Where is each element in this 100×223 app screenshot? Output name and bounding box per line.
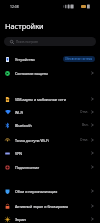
staticText: VPN: [15, 151, 91, 156]
staticText: SIM-карты и мобильные сети: [15, 97, 91, 102]
button[interactable]: Экран: [0, 212, 100, 223]
staticText: Wi-Fi: [15, 110, 80, 115]
button[interactable]: Поиск настроек: [4, 37, 96, 46]
staticText: 12:08: [10, 4, 19, 9]
button[interactable]: Состояние защиты: [0, 66, 100, 80]
staticText: Точка доступа Wi-Fi: [15, 138, 80, 143]
button[interactable]: SIM-карты и мобильные сети: [0, 92, 100, 106]
staticText: Состояние защиты: [15, 71, 91, 76]
button[interactable]: Точка доступа Wi-Fi: [0, 133, 100, 147]
staticText: Подключение: [15, 165, 91, 170]
staticText: Настройки: [5, 21, 44, 31]
button[interactable]: Обновление системы: [63, 56, 95, 62]
button[interactable]: VPN: [0, 146, 100, 160]
staticText: Откл.: [80, 138, 89, 142]
staticText: Обновление системы: [65, 57, 93, 61]
staticText: Bluetooth: [15, 123, 82, 128]
staticText: Обои и персонализация: [15, 189, 91, 194]
button[interactable]: Подключение: [0, 160, 100, 174]
staticText: Устройство: [15, 57, 35, 62]
staticText: Экран: [15, 217, 91, 222]
button[interactable]: Обои и персонализация: [0, 184, 100, 198]
staticText: Активный экран и блокировка: [15, 204, 91, 209]
button[interactable]: Wi-Fi: [0, 105, 100, 119]
button[interactable]: Bluetooth: [0, 118, 100, 132]
staticText: Вкл.: [82, 123, 89, 127]
button[interactable]: Устройство: [0, 52, 100, 66]
staticText: Откл.: [80, 110, 89, 114]
button[interactable]: Активный экран и блокировка: [0, 199, 100, 213]
staticText: Поиск настроек: [16, 40, 39, 44]
